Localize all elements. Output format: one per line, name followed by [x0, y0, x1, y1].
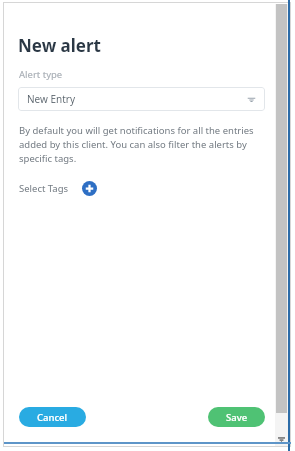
staticText: By default you will get notifications fo…: [19, 124, 269, 165]
staticText: Save: [226, 411, 248, 424]
staticText: Cancel: [37, 411, 68, 424]
staticText: Alert type: [19, 68, 63, 81]
staticText: New Entry: [27, 92, 76, 106]
button[interactable]: New Entry: [18, 87, 265, 111]
button[interactable]: Cancel: [19, 407, 86, 427]
button[interactable]: Save: [208, 407, 265, 427]
button[interactable]: Add tag: [80, 179, 98, 197]
staticText: Select Tags: [19, 182, 69, 195]
staticText: New alert: [18, 34, 101, 57]
button[interactable]: Scroll down: [275, 433, 288, 446]
